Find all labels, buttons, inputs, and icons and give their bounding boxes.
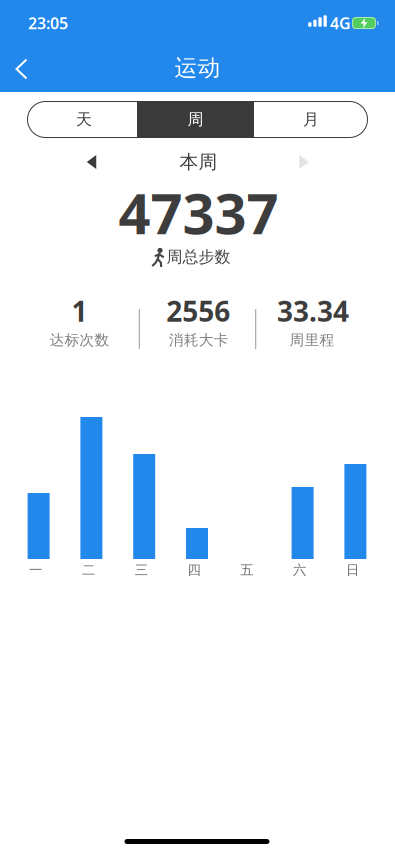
staticText: 运动 <box>174 54 220 82</box>
staticText: 47337 <box>118 175 278 250</box>
staticText: 日 <box>346 562 359 578</box>
staticText: 五 <box>240 562 253 578</box>
staticText: 二 <box>82 562 95 578</box>
staticText: 六 <box>293 562 306 578</box>
staticText: 周 <box>187 110 203 129</box>
button[interactable]: 周 <box>139 101 252 138</box>
staticText: 周里程 <box>289 331 334 349</box>
staticText: 达标次数 <box>49 331 109 349</box>
staticText: 天 <box>76 110 92 129</box>
staticText: 三 <box>135 562 148 578</box>
staticText: 四 <box>187 562 200 578</box>
staticText: 23:05 <box>28 12 68 34</box>
button[interactable]: Next week <box>291 147 317 177</box>
button[interactable]: Back <box>6 49 36 88</box>
staticText: 周总步数 <box>166 247 230 267</box>
staticText: 4G <box>330 12 351 34</box>
staticText: 一 <box>29 562 42 578</box>
staticText: 本周 <box>179 150 217 173</box>
staticText: 消耗大卡 <box>169 331 229 349</box>
staticText: 月 <box>303 110 319 129</box>
button[interactable]: Previous week <box>79 147 104 177</box>
button[interactable]: 月 <box>254 101 367 138</box>
staticText: 1 <box>71 292 87 330</box>
staticText: 2556 <box>166 292 230 330</box>
button[interactable]: 天 <box>27 101 140 138</box>
staticText: 33.34 <box>277 292 349 330</box>
